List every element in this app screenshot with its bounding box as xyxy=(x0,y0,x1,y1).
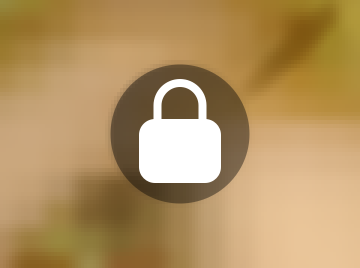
button[interactable]: Locked content xyxy=(0,0,360,268)
